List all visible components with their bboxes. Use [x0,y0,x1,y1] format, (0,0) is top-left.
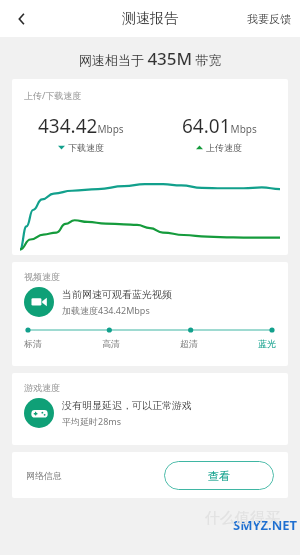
staticText: 标清 [24,338,42,349]
button[interactable]: 我要反馈 [238,6,300,32]
staticText: 网络信息 [26,470,62,481]
staticText: 我要反馈 [247,12,291,26]
staticText: 查看 [208,469,230,483]
staticText: 434.42Mbps [38,113,124,139]
staticText: 测速报告 [122,10,178,28]
button[interactable]: 查看 [164,461,274,490]
staticText: 没有明显延迟，可以正常游戏 [62,399,192,412]
staticText: 超清 [180,338,198,349]
staticText: 加载速度434.42Mbps [62,304,150,316]
staticText: 视频速度 [24,271,60,282]
staticText: 上传/下载速度 [24,89,82,101]
staticText: 什么值得买 [205,509,280,528]
staticText: 平均延时28ms [62,415,122,427]
staticText: 高清 [102,338,120,349]
staticText: 当前网速可观看蓝光视频 [62,288,172,301]
staticText: 下载速度 [68,142,104,153]
staticText: SMYZ.NET [233,516,298,534]
staticText: 上传速度 [206,142,242,153]
button[interactable]: Back [6,3,38,35]
staticText: 网速相当于 435M 带宽 [79,47,222,70]
staticText: 游戏速度 [24,382,60,393]
staticText: 64.01Mbps [182,113,257,139]
staticText: 蓝光 [258,338,276,349]
